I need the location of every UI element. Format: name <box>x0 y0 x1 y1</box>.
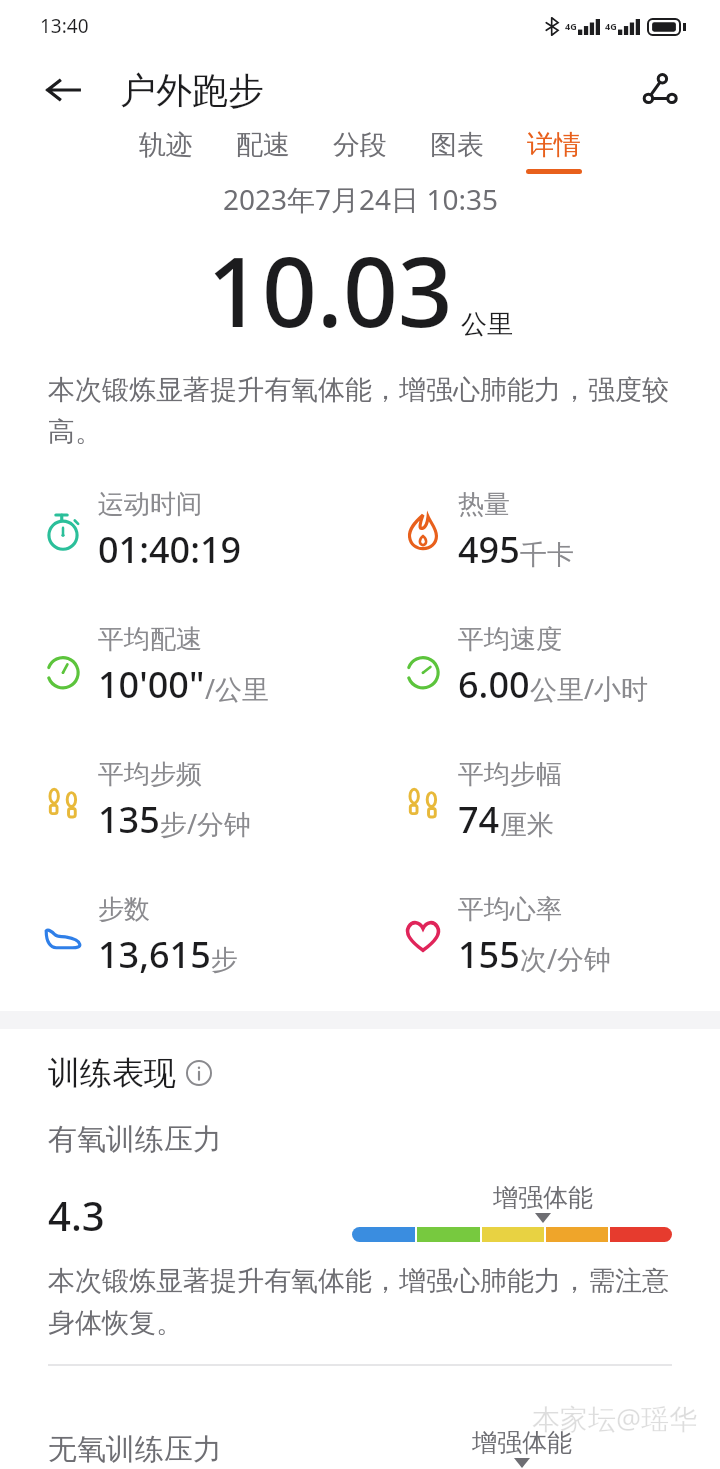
other: Info <box>186 1060 212 1086</box>
staticText: 公里/小时 <box>530 670 649 707</box>
staticText: 训练表现 <box>48 1053 176 1093</box>
button[interactable]: 平均心率 <box>360 868 720 1003</box>
button[interactable]: 运动时间 <box>0 463 360 598</box>
staticText: 分段 <box>333 128 387 162</box>
button[interactable]: 平均步频 <box>0 733 360 868</box>
staticText: 13:40 <box>40 13 89 39</box>
staticText: 13,615 <box>98 930 211 979</box>
button[interactable]: 热量 <box>360 463 720 598</box>
staticText: 增强体能 <box>472 1427 572 1458</box>
staticText: 本次锻炼显著提升有氧体能，增强心肺能力，强度较高。 <box>48 373 672 449</box>
staticText: 135 <box>98 795 160 844</box>
staticText: 4G <box>565 20 577 32</box>
staticText: 公里 <box>461 308 513 341</box>
button[interactable]: 平均配速 <box>0 598 360 733</box>
staticText: 平均步频 <box>98 758 202 791</box>
staticText: 运动时间 <box>98 488 202 521</box>
button[interactable]: 分段 <box>311 128 408 169</box>
button[interactable]: 图表 <box>408 128 505 169</box>
staticText: 步/分钟 <box>160 805 252 842</box>
staticText: 热量 <box>458 488 510 521</box>
staticText: 4G <box>605 20 617 32</box>
staticText: 轨迹 <box>139 128 193 162</box>
button[interactable]: Share <box>634 64 686 116</box>
button[interactable]: 训练表现 <box>48 1053 212 1093</box>
staticText: 平均速度 <box>458 623 562 656</box>
button[interactable]: 配速 <box>214 128 311 169</box>
staticText: 155 <box>458 930 520 979</box>
staticText: 01:40:19 <box>98 525 242 574</box>
staticText: 本家坛@瑶华 <box>532 1399 698 1437</box>
staticText: 6.00 <box>458 660 530 709</box>
button[interactable]: 平均步幅 <box>360 733 720 868</box>
staticText: 厘米 <box>500 808 554 842</box>
button[interactable]: 步数 <box>0 868 360 1003</box>
staticText: 10.03 <box>207 224 453 355</box>
staticText: 有氧训练压力 <box>48 1121 222 1158</box>
staticText: 平均心率 <box>458 893 562 926</box>
staticText: /公里 <box>205 670 270 707</box>
staticText: 次/分钟 <box>520 940 612 977</box>
staticText: 平均配速 <box>98 623 202 656</box>
staticText: 图表 <box>430 128 484 162</box>
staticText: 详情 <box>527 128 581 162</box>
staticText: 2023年7月24日 10:35 <box>223 180 498 218</box>
staticText: 千卡 <box>520 538 574 572</box>
staticText: 4.3 <box>48 1188 105 1242</box>
button[interactable]: 详情 <box>505 128 602 174</box>
staticText: 增强体能 <box>493 1182 593 1213</box>
button[interactable]: 轨迹 <box>118 128 214 169</box>
staticText: 步 <box>211 943 238 977</box>
button[interactable]: 平均速度 <box>360 598 720 733</box>
staticText: 本次锻炼显著提升有氧体能，增强心肺能力，需注意身体恢复。 <box>48 1264 672 1340</box>
staticText: 495 <box>458 525 520 574</box>
staticText: 10'00" <box>98 660 205 709</box>
staticText: 步数 <box>98 893 150 926</box>
staticText: 74 <box>458 795 500 844</box>
button[interactable]: Back <box>40 67 86 113</box>
staticText: 配速 <box>236 128 290 162</box>
staticText: 户外跑步 <box>120 68 264 113</box>
staticText: 平均步幅 <box>458 758 562 791</box>
staticText: 无氧训练压力 <box>48 1431 222 1468</box>
